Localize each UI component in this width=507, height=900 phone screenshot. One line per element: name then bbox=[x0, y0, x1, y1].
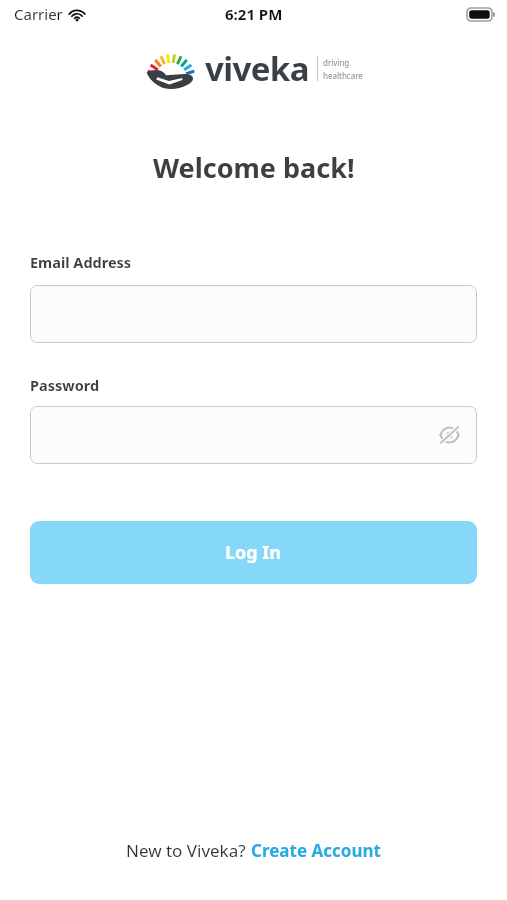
button[interactable]: Show password bbox=[30, 406, 477, 464]
button[interactable]: Log In bbox=[30, 521, 477, 584]
staticText: 6:21 PM bbox=[225, 4, 283, 24]
staticText: healthcare bbox=[323, 70, 363, 81]
staticText: Welcome back! bbox=[153, 149, 355, 186]
staticText: driving bbox=[323, 57, 350, 68]
button[interactable]: Show password bbox=[434, 420, 464, 450]
staticText: viveka bbox=[205, 46, 309, 91]
staticText: Email Address bbox=[30, 252, 132, 272]
button[interactable] bbox=[30, 285, 477, 343]
staticText: Carrier bbox=[14, 4, 63, 24]
staticText: Password bbox=[30, 375, 100, 395]
button[interactable]: Create Account bbox=[251, 839, 381, 862]
staticText: Create Account bbox=[251, 839, 381, 862]
staticText: Log In bbox=[225, 540, 282, 565]
staticText: New to Viveka? bbox=[126, 839, 251, 862]
